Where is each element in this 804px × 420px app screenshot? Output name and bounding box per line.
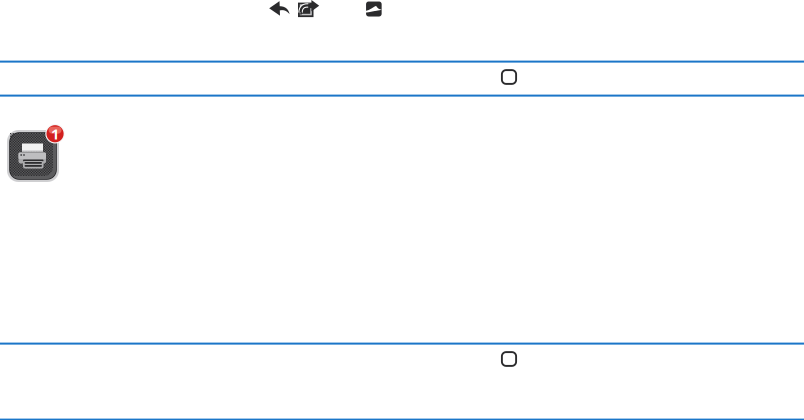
button[interactable]: Send [364,0,383,16]
staticText: 1 [51,124,59,143]
button[interactable]: Share [298,0,319,17]
button[interactable]: Back [269,1,290,16]
button[interactable]: Option [502,70,516,84]
button[interactable]: Option [502,352,516,366]
